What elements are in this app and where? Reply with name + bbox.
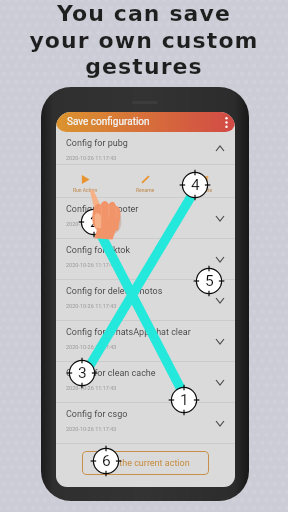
staticText: Config for tiktok [66,245,131,256]
staticText: Config for delete photos [66,286,163,297]
staticText: Run Action [73,187,98,193]
button[interactable]: More options [221,112,232,132]
staticText: 6 [102,452,111,470]
button[interactable]: Config for WhatsApp chat clear [56,321,235,361]
staticText: 2020-10-26 11:17:43 [66,221,117,227]
staticText: Config for shooter [66,204,139,215]
staticText: Config for pubg [66,138,128,149]
staticText: 1 [180,391,189,409]
staticText: 2020-10-26 11:17:43 [66,262,117,268]
button[interactable]: Config for pubg [56,132,235,164]
staticText: Config for csgo [66,409,128,420]
staticText: 2020-10-26 11:17:43 [66,385,117,391]
staticText: Add the current action [101,458,190,469]
staticText: 2020-10-26 11:17:43 [66,155,117,161]
staticText: 2020-10-26 11:17:43 [66,426,117,432]
staticText: 3 [78,364,87,382]
button[interactable]: Config for shooter [56,198,235,238]
staticText: Rename [136,187,155,193]
staticText: Delete [198,187,213,193]
staticText: 2020-10-26 11:17:43 [66,344,117,350]
staticText: Save configuration [67,116,150,128]
button[interactable]: Run Action [56,170,115,193]
button[interactable]: Save configuration [56,112,235,132]
button[interactable]: Add the current action [82,451,209,475]
staticText: You can save your own custom gestures [29,1,259,79]
staticText: Config for clean cache [66,368,156,379]
staticText: Config for WhatsApp chat clear [66,327,191,338]
button[interactable]: Config for csgo [56,403,235,443]
staticText: 5 [205,272,214,290]
staticText: 2020-10-26 11:17:43 [66,303,117,309]
button[interactable]: Rename [115,170,175,193]
button[interactable]: Config for clean cache [56,362,235,402]
button[interactable]: Config for tiktok [56,239,235,279]
button[interactable]: Delete [175,170,235,193]
staticText: 2 [90,213,99,231]
button[interactable]: Config for delete photos [56,280,235,320]
staticText: 4 [191,176,200,194]
